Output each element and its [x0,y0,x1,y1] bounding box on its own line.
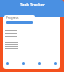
button[interactable]: Nav [20,60,26,66]
staticText: Progress [6,16,19,20]
button[interactable]: Progress [4,15,35,28]
staticText: Task Tracker [20,2,45,7]
button[interactable]: Nav [4,60,10,66]
button[interactable]: Nav [52,60,58,66]
button[interactable]: Nav [36,60,42,66]
